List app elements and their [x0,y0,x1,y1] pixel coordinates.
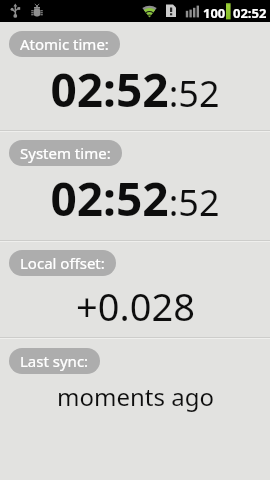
staticText: Last sync: [20,351,89,371]
button[interactable]: System time: [9,140,122,166]
button[interactable]: Atomic time: [9,31,120,57]
staticText: moments ago [57,380,214,413]
staticText: System time: [20,143,111,163]
staticText: 02:52 [233,4,267,22]
button[interactable]: Local offset: [9,250,116,276]
staticText: +0.028 [76,280,195,332]
staticText: 100 [203,4,226,22]
button[interactable]: Last sync: [9,348,100,374]
staticText: 02:52:52 [50,167,220,230]
staticText: 02:52:52 [50,58,220,121]
staticText: Atomic time: [20,34,109,54]
staticText: Local offset: [20,253,105,273]
